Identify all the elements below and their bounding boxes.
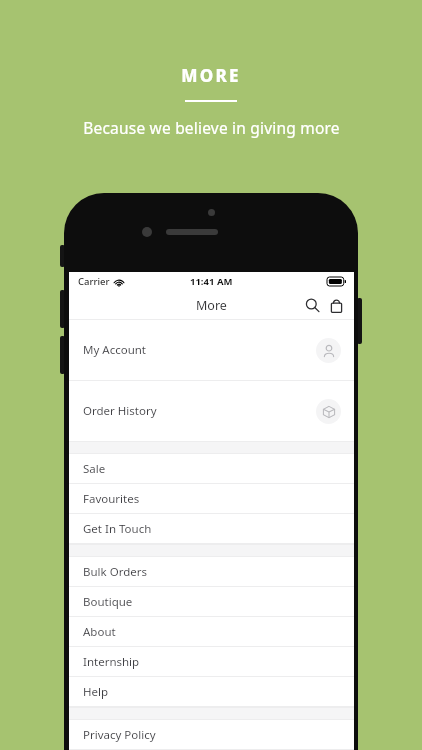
- button[interactable]: Sale: [69, 454, 354, 483]
- staticText: About: [83, 624, 116, 640]
- staticText: Privacy Policy: [83, 727, 156, 743]
- staticText: MORE: [181, 64, 241, 87]
- staticText: Order History: [83, 403, 157, 419]
- button[interactable]: Help: [69, 677, 354, 706]
- staticText: Sale: [83, 461, 106, 477]
- button[interactable]: My Account: [69, 320, 354, 380]
- button[interactable]: Boutique: [69, 587, 354, 616]
- button[interactable]: Internship: [69, 647, 354, 676]
- button[interactable]: Favourites: [69, 484, 354, 513]
- staticText: My Account: [83, 342, 146, 358]
- staticText: Help: [83, 684, 109, 700]
- button[interactable]: Privacy Policy: [69, 720, 354, 749]
- staticText: Bulk Orders: [83, 564, 147, 580]
- button[interactable]: Bulk Orders: [69, 557, 354, 586]
- button[interactable]: Order History: [69, 381, 354, 441]
- button[interactable]: Shopping bag: [325, 294, 347, 316]
- staticText: Internship: [83, 654, 140, 670]
- staticText: More: [196, 297, 227, 314]
- button[interactable]: Search: [301, 294, 323, 316]
- staticText: Because we believe in giving more: [83, 117, 340, 138]
- button[interactable]: About: [69, 617, 354, 646]
- button[interactable]: Get In Touch: [69, 514, 354, 543]
- staticText: 11:41 AM: [190, 275, 233, 288]
- staticText: Carrier: [78, 275, 110, 288]
- staticText: Get In Touch: [83, 521, 152, 537]
- staticText: Favourites: [83, 491, 140, 507]
- staticText: Boutique: [83, 594, 133, 610]
